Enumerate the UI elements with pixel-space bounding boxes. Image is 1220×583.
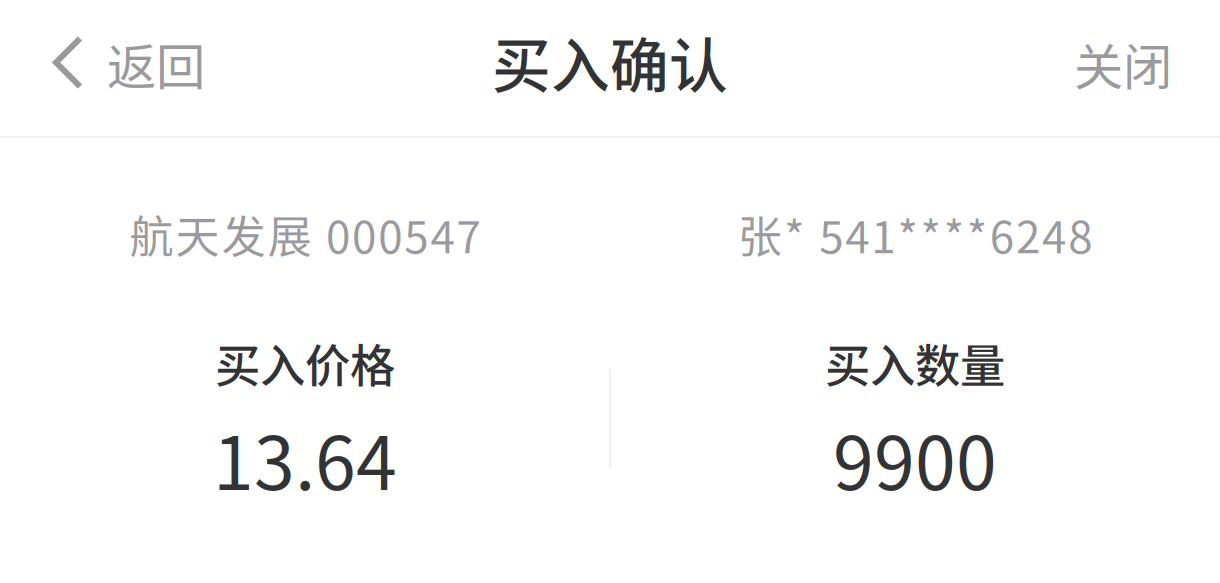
staticText: 航天发展 000547 (129, 202, 480, 266)
staticText: 买入价格 (215, 330, 395, 396)
staticText: 买入确认 (492, 19, 728, 104)
staticText: 张* 541****6248 (738, 202, 1092, 266)
staticText: 关闭 (1074, 28, 1172, 99)
button[interactable]: 返回 (0, 0, 260, 135)
button[interactable]: 关闭 (980, 0, 1220, 135)
staticText: 9900 (833, 405, 997, 511)
staticText: 13.64 (213, 405, 397, 511)
staticText: 返回 (107, 28, 205, 99)
staticText: 买入数量 (825, 330, 1005, 396)
